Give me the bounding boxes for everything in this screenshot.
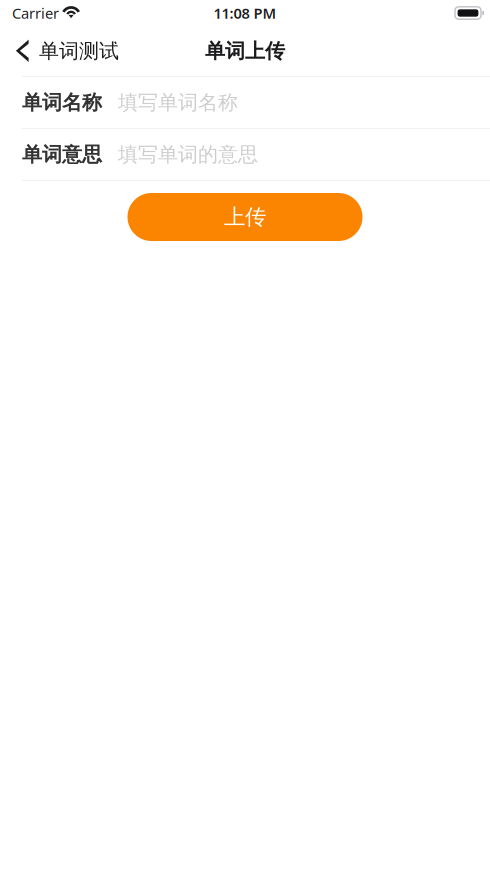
staticText: 填写单词名称 [118,90,238,115]
button[interactable]: 单词测试 [0,26,131,76]
staticText: 单词测试 [39,39,119,63]
staticText: 填写单词的意思 [118,142,258,167]
staticText: 11:08 PM [213,3,276,23]
staticText: 单词名称 [22,90,102,115]
staticText: Carrier [12,3,59,23]
staticText: 上传 [224,204,266,230]
button[interactable]: 上传 [127,193,362,241]
staticText: 单词上传 [205,39,285,63]
staticText: 单词意思 [22,142,102,167]
